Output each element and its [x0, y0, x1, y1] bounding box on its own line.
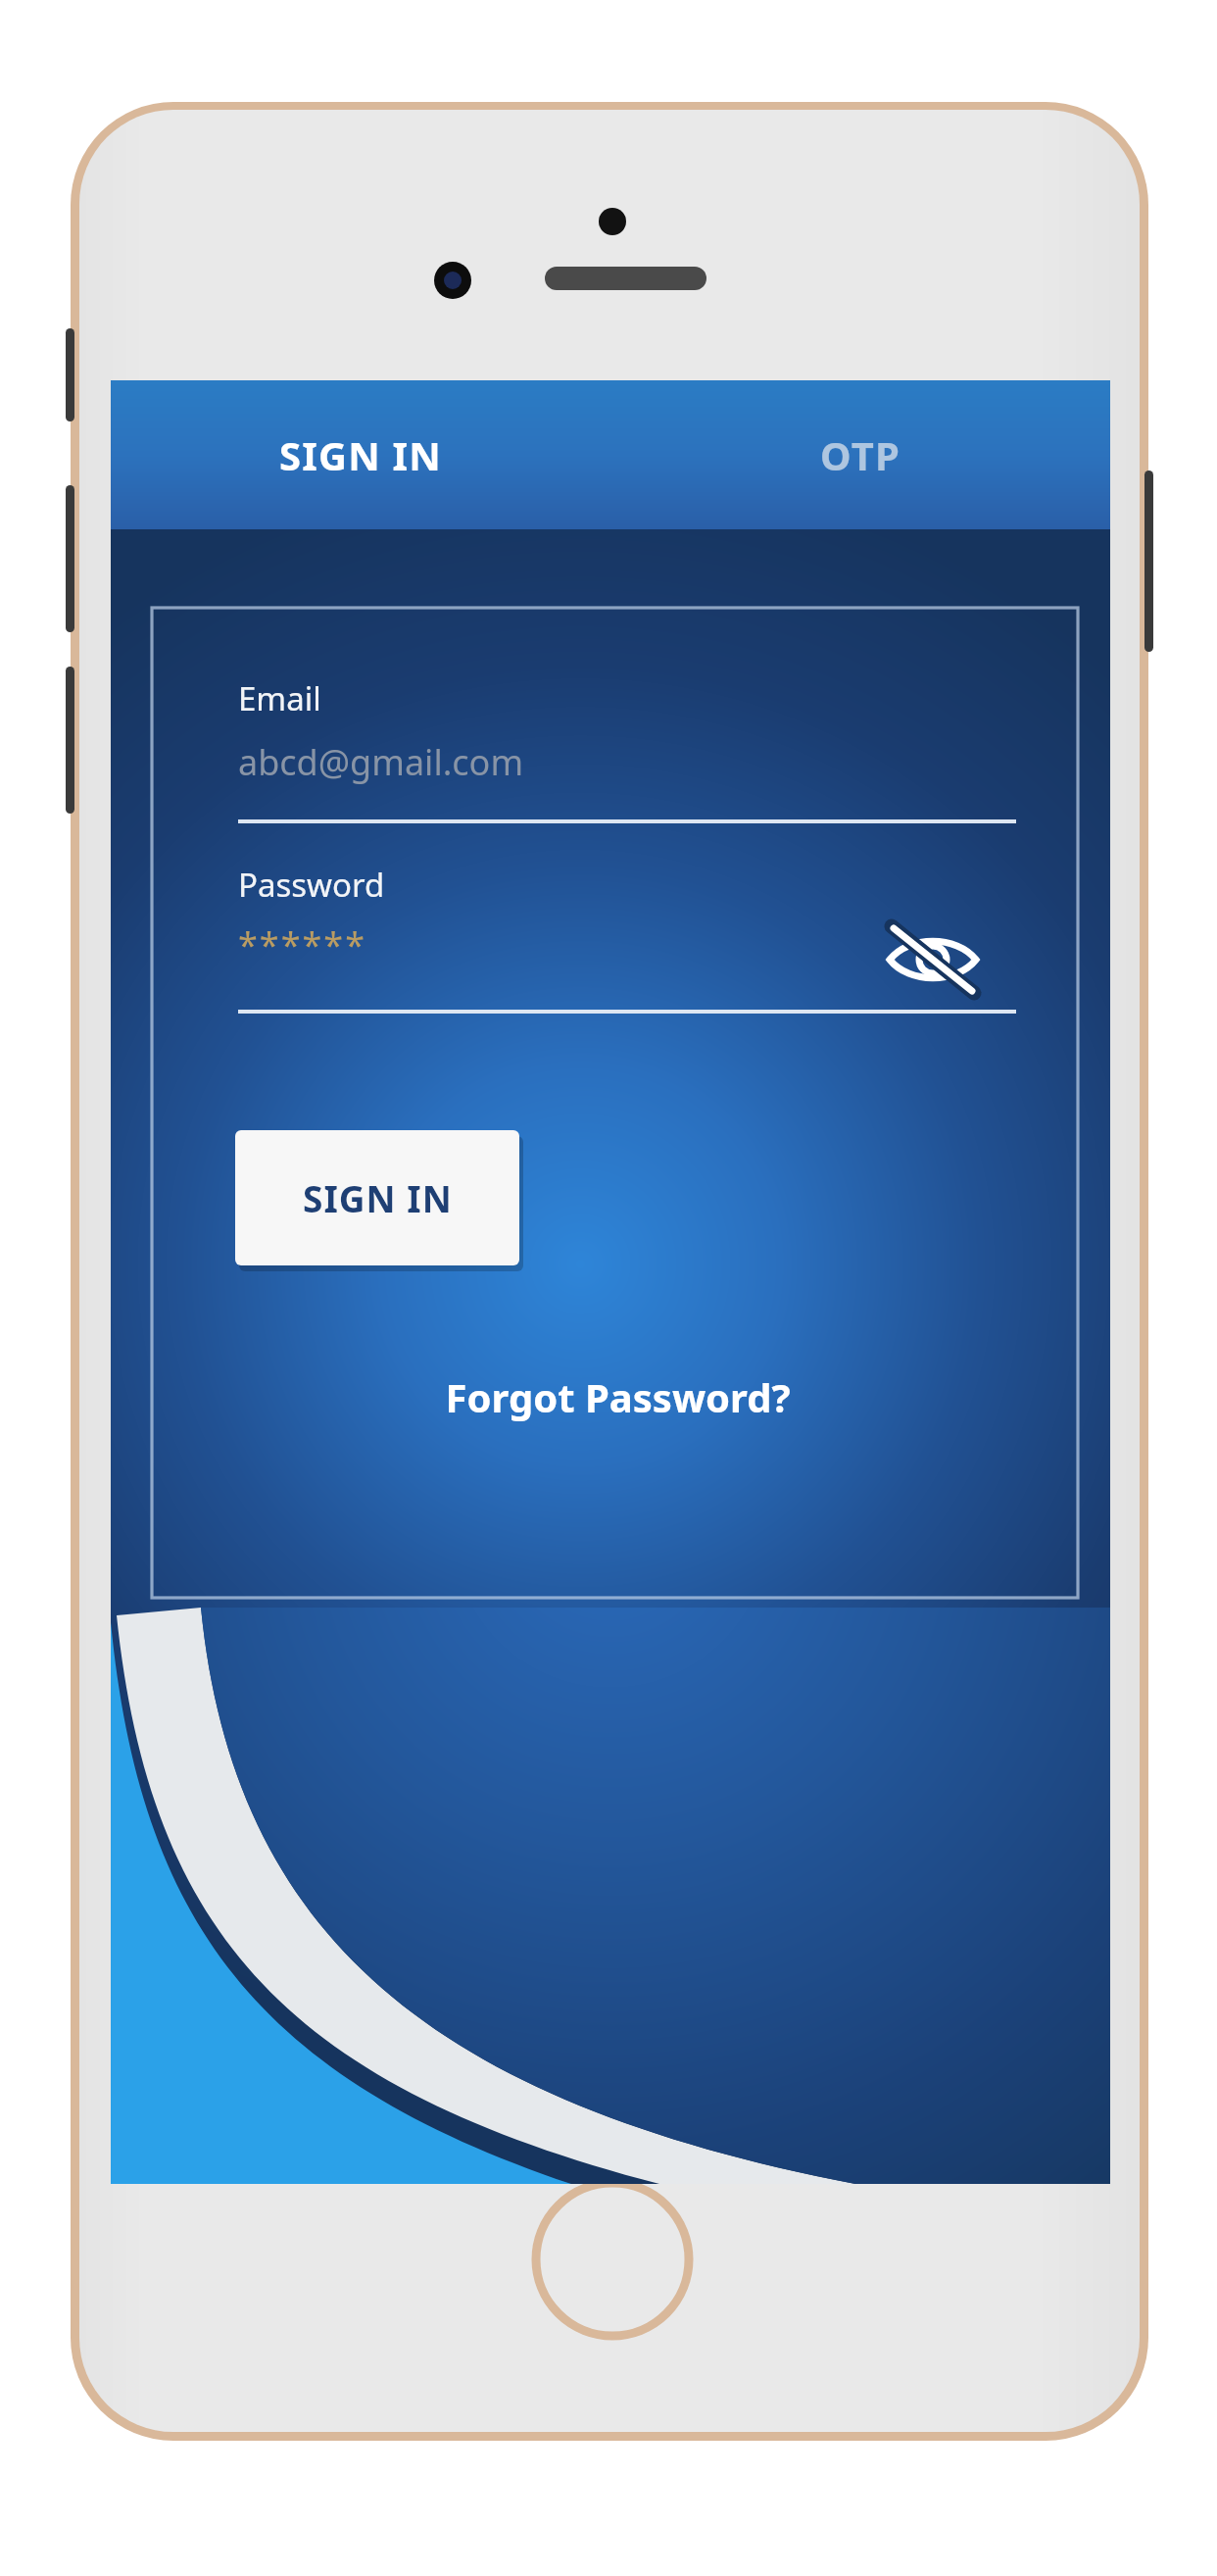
button[interactable]: Password — [238, 863, 1022, 1010]
staticText: SIGN IN — [303, 1173, 453, 1222]
button[interactable]: OTP — [610, 380, 1110, 529]
staticText: abcd@gmail.com — [238, 738, 524, 786]
staticText: OTP — [820, 428, 901, 481]
staticText: Email — [238, 676, 321, 720]
staticText: Password — [238, 863, 385, 907]
button[interactable]: Email — [238, 676, 1022, 828]
button[interactable]: Show password — [872, 902, 995, 1019]
staticText: SIGN IN — [279, 428, 442, 481]
button[interactable]: SIGN IN — [111, 380, 610, 529]
button[interactable]: SIGN IN — [235, 1130, 519, 1265]
button[interactable]: Forgot Password? — [372, 1353, 862, 1441]
staticText: ****** — [238, 920, 367, 968]
staticText: Forgot Password? — [445, 1370, 791, 1423]
